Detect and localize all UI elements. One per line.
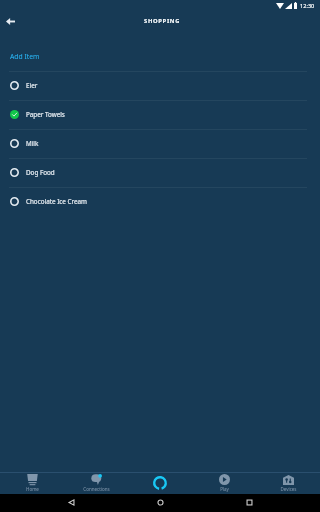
button[interactable]: Devices [256, 473, 320, 494]
staticText: Paper Towels [26, 110, 65, 119]
button[interactable]: Back [0, 10, 21, 32]
staticText: Home [26, 486, 39, 492]
staticText: SHOPPING [144, 17, 181, 25]
button[interactable]: Dog Food [0, 158, 320, 187]
button[interactable]: Connections [64, 473, 128, 494]
button[interactable]: Milk [0, 129, 320, 158]
staticText: Eier [26, 81, 38, 90]
staticText: Devices [280, 486, 297, 492]
button[interactable]: Eier [0, 71, 320, 100]
button[interactable]: Add Item [0, 42, 320, 71]
staticText: Add Item [10, 52, 40, 61]
button[interactable]: Home [0, 473, 64, 494]
button[interactable]: Paper Towels [0, 100, 320, 129]
button[interactable]: Play [192, 473, 256, 494]
staticText: Connections [83, 486, 110, 492]
staticText: Play [220, 486, 229, 492]
staticText: Milk [26, 139, 39, 148]
button[interactable]: Assistant [128, 473, 192, 494]
button[interactable]: Chocolate Ice Cream [0, 187, 320, 216]
staticText: Dog Food [26, 168, 55, 177]
staticText: 12:30 [300, 2, 315, 10]
staticText: Chocolate Ice Cream [26, 197, 87, 206]
